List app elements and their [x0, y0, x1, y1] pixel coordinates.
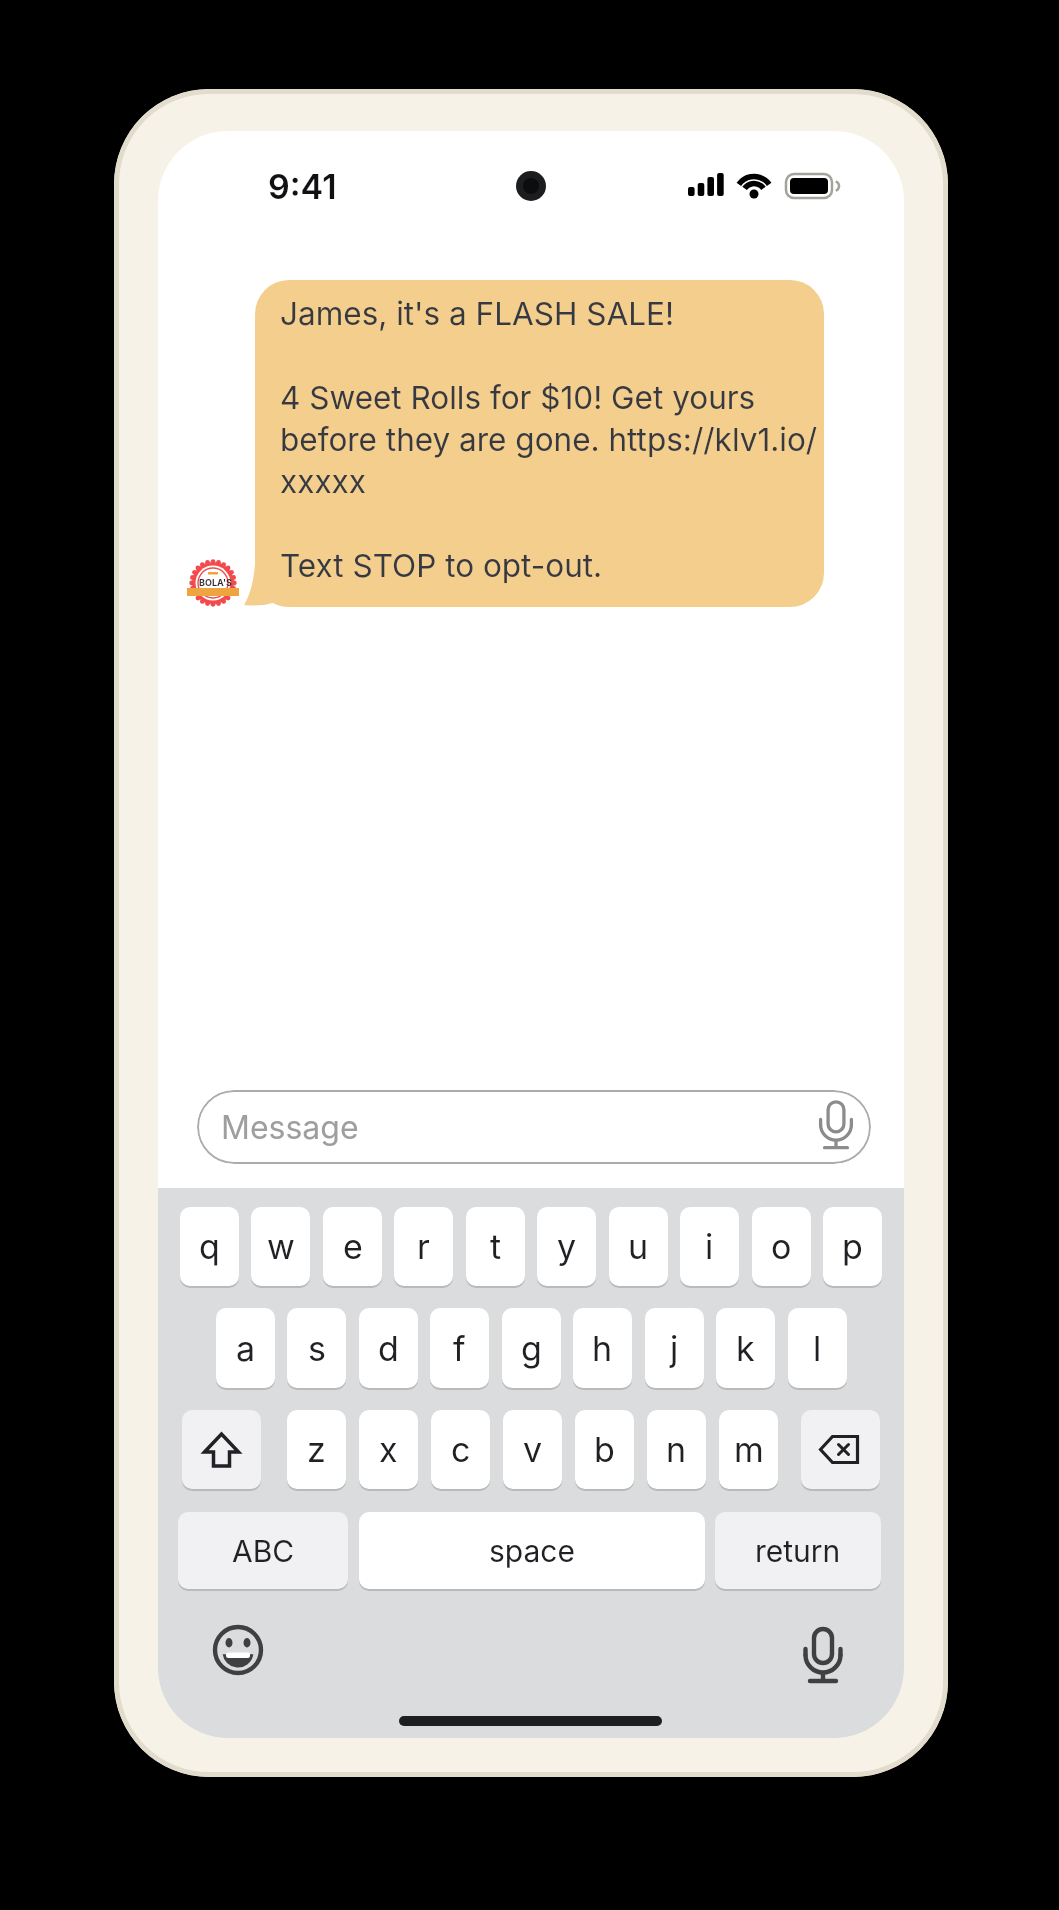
staticText: g [521, 1328, 542, 1369]
button[interactable]: y [537, 1207, 596, 1286]
staticText: p [842, 1226, 863, 1267]
staticText: h [592, 1328, 613, 1369]
button[interactable]: p [823, 1207, 882, 1286]
staticText: q [199, 1226, 220, 1267]
staticText: j [670, 1328, 679, 1369]
button[interactable]: w [251, 1207, 310, 1286]
button[interactable]: x [359, 1410, 418, 1489]
staticText: c [451, 1429, 471, 1470]
button[interactable]: i [680, 1207, 739, 1286]
staticText: f [453, 1328, 466, 1369]
staticText: v [523, 1429, 543, 1470]
staticText: BOLA'S [199, 577, 232, 588]
staticText: u [628, 1226, 649, 1267]
staticText: space [489, 1533, 575, 1569]
staticText: m [734, 1429, 764, 1470]
staticText: return [755, 1533, 841, 1569]
button[interactable]: r [394, 1207, 453, 1286]
button[interactable]: a [216, 1308, 275, 1388]
button[interactable]: s [287, 1308, 346, 1388]
button[interactable]: Message [197, 1090, 871, 1164]
button[interactable]: ABC [178, 1512, 348, 1589]
staticText: z [307, 1429, 326, 1470]
button[interactable]: c [431, 1410, 490, 1489]
staticText: o [771, 1226, 792, 1267]
button[interactable]: o [752, 1207, 811, 1286]
staticText: w [267, 1226, 295, 1267]
staticText: y [557, 1226, 577, 1267]
button[interactable]: space [359, 1512, 705, 1589]
staticText: Message [221, 1108, 359, 1147]
staticText: ABC [232, 1533, 295, 1569]
button[interactable]: g [502, 1308, 561, 1388]
button[interactable]: t [466, 1207, 525, 1286]
staticText: i [705, 1226, 714, 1267]
button[interactable]: d [359, 1308, 418, 1388]
button[interactable]: j [645, 1308, 704, 1388]
button[interactable]: u [609, 1207, 668, 1286]
button[interactable]: e [323, 1207, 382, 1286]
staticText: b [594, 1429, 615, 1470]
button[interactable]: z [287, 1410, 346, 1489]
staticText: k [736, 1328, 755, 1369]
button[interactable]: b [575, 1410, 634, 1489]
staticText: s [308, 1328, 326, 1369]
button[interactable] [801, 1410, 880, 1489]
button[interactable]: return [715, 1512, 881, 1589]
staticText: l [813, 1328, 822, 1369]
button[interactable]: f [430, 1308, 489, 1388]
staticText: 9:41 [268, 166, 337, 207]
button[interactable]: m [719, 1410, 778, 1489]
button[interactable] [182, 1410, 261, 1489]
button[interactable]: q [180, 1207, 239, 1286]
staticText: n [666, 1429, 687, 1470]
staticText: x [379, 1429, 398, 1470]
button[interactable] [803, 1619, 845, 1689]
staticText: James, it's a FLASH SALE! 4 Sweet Rolls … [280, 294, 818, 584]
button[interactable] [212, 1624, 264, 1676]
staticText: d [378, 1328, 399, 1369]
button[interactable]: James, it's a FLASH SALE! 4 Sweet Rolls … [255, 280, 824, 607]
button[interactable]: k [716, 1308, 775, 1388]
button[interactable] [183, 553, 247, 617]
staticText: e [343, 1226, 363, 1267]
button[interactable]: v [503, 1410, 562, 1489]
button[interactable]: n [647, 1410, 706, 1489]
staticText: r [417, 1226, 430, 1267]
staticText: t [490, 1226, 502, 1267]
button[interactable]: l [788, 1308, 847, 1388]
staticText: a [236, 1328, 256, 1369]
button[interactable]: h [573, 1308, 632, 1388]
